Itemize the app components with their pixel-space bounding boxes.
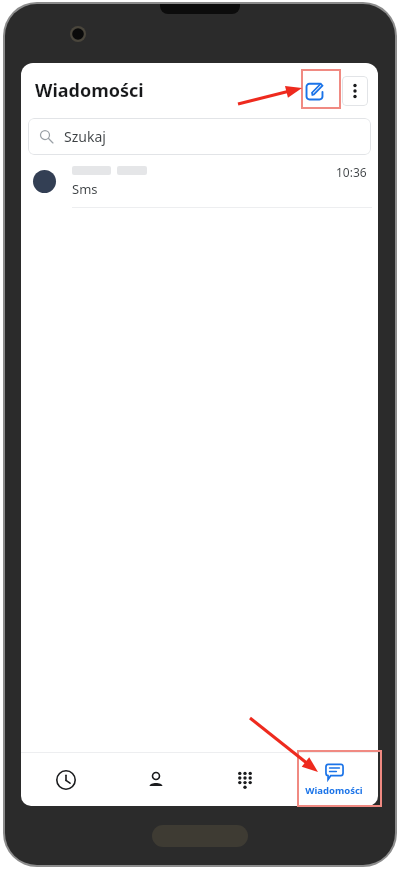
staticText: Sms [72, 180, 98, 198]
button[interactable]: Ostatnie [21, 753, 111, 806]
button[interactable]: Nowa wiadomość [297, 74, 331, 108]
button[interactable]: Szukaj [28, 118, 371, 155]
button[interactable]: Więcej opcji [342, 76, 368, 106]
button[interactable]: Wiadomości [289, 753, 378, 806]
staticText: Wiadomości [35, 78, 144, 103]
staticText: 10:36 [336, 164, 367, 180]
staticText: Wiadomości [305, 784, 363, 797]
staticText: Szukaj [64, 127, 106, 146]
button[interactable]: Sms [21, 155, 378, 208]
button[interactable]: Klawiatura [200, 753, 289, 806]
button[interactable]: Kontakty [111, 753, 200, 806]
